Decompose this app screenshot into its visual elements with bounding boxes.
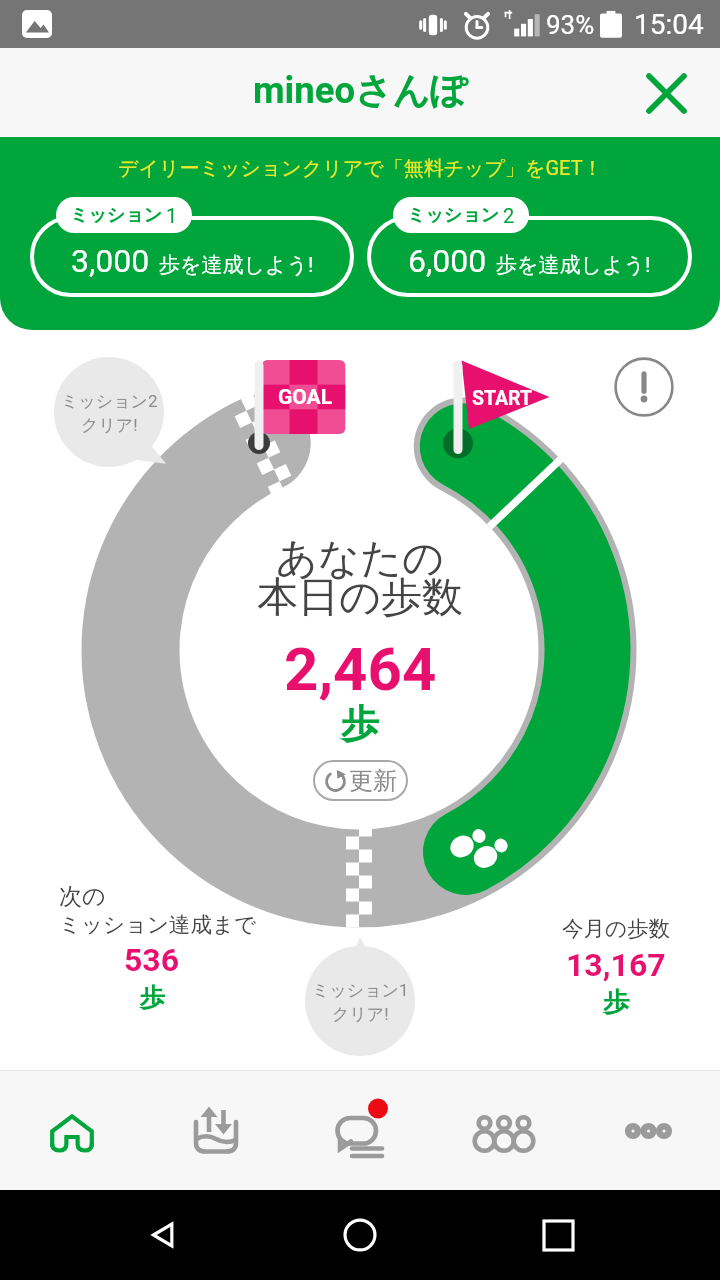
staticText: ミッション1 bbox=[312, 980, 409, 1001]
staticText: 93% bbox=[546, 10, 595, 40]
staticText: デイリーミッションクリアで「無料チップ」をGET！ bbox=[118, 156, 603, 181]
staticText: 本日の歩数 bbox=[257, 572, 463, 624]
button[interactable]: Back bbox=[128, 1200, 198, 1270]
staticText: クリア! bbox=[332, 1004, 389, 1025]
staticText: クリア! bbox=[81, 415, 138, 436]
button[interactable]: 3,000 bbox=[30, 216, 354, 297]
button[interactable]: Messages bbox=[288, 1071, 432, 1190]
staticText: ミッション bbox=[407, 204, 500, 227]
staticText: 歩 bbox=[603, 986, 629, 1019]
staticText: mineoさんぽ bbox=[253, 68, 468, 114]
staticText: 次の bbox=[59, 882, 106, 911]
button[interactable]: Close bbox=[626, 53, 706, 133]
staticText: 6,000 bbox=[408, 242, 487, 280]
staticText: ミッション達成まで bbox=[59, 911, 257, 938]
staticText: START bbox=[472, 387, 533, 410]
button[interactable]: 更新 bbox=[313, 760, 408, 801]
staticText: 歩 bbox=[341, 700, 379, 748]
staticText: 歩を達成しよう! bbox=[159, 252, 314, 278]
staticText: 1 bbox=[166, 204, 178, 227]
staticText: 更新 bbox=[349, 766, 397, 796]
button[interactable]: More bbox=[576, 1071, 720, 1190]
staticText: 3,000 bbox=[71, 242, 150, 280]
staticText: 15:04 bbox=[634, 8, 704, 41]
staticText: GOAL bbox=[278, 385, 333, 410]
button[interactable]: Community bbox=[432, 1071, 576, 1190]
button[interactable]: Information bbox=[613, 356, 675, 418]
button[interactable]: Recents bbox=[523, 1200, 593, 1270]
button[interactable]: Home bbox=[0, 1071, 144, 1190]
staticText: 歩 bbox=[140, 982, 165, 1013]
staticText: 13,167 bbox=[566, 946, 666, 984]
staticText: あなたの bbox=[276, 533, 444, 585]
button[interactable]: 6,000 bbox=[367, 216, 692, 297]
button[interactable]: Steps data bbox=[144, 1071, 288, 1190]
staticText: 今月の歩数 bbox=[562, 915, 671, 942]
staticText: 2,464 bbox=[284, 634, 437, 704]
staticText: ミッション bbox=[70, 204, 163, 227]
staticText: ミッション2 bbox=[61, 391, 158, 412]
button[interactable]: Home bbox=[325, 1200, 395, 1270]
staticText: 2 bbox=[503, 204, 515, 227]
staticText: 536 bbox=[124, 941, 180, 979]
staticText: 歩を達成しよう! bbox=[496, 252, 651, 278]
